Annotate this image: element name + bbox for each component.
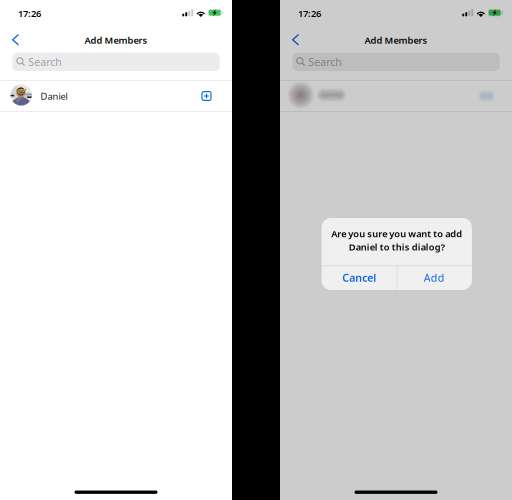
staticText: 17:26 [298, 7, 321, 20]
button[interactable]: Cancel [322, 265, 397, 290]
button[interactable]: Back [5, 29, 27, 51]
staticText: 17:26 [18, 7, 41, 20]
staticText: Are you sure you want to add [331, 227, 462, 240]
staticText: Add Members [364, 34, 427, 46]
staticText: Daniel [40, 90, 67, 102]
staticText: Daniel to this dialog? [349, 241, 445, 253]
staticText: Add [424, 271, 445, 285]
staticText: Search [308, 55, 342, 69]
button[interactable]: Add [397, 265, 472, 290]
button[interactable]: Search [12, 52, 220, 71]
button[interactable]: Search [292, 52, 500, 71]
button[interactable]: Back [285, 29, 307, 51]
button[interactable] [280, 80, 512, 112]
staticText: Search [28, 55, 62, 69]
staticText: Add Members [84, 34, 147, 46]
staticText: Cancel [342, 271, 376, 285]
button[interactable]: Daniel [0, 80, 232, 112]
